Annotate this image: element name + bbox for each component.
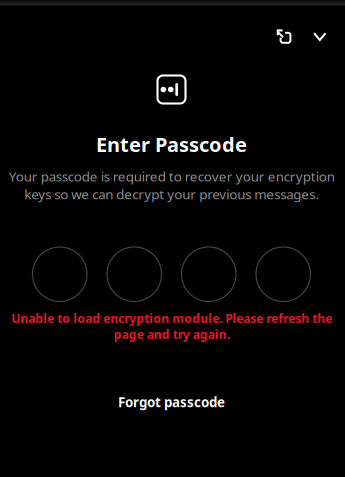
staticText: Enter Passcode — [96, 131, 247, 158]
staticText: Forgot passcode — [118, 393, 225, 411]
button[interactable]: Minimize — [304, 22, 336, 52]
staticText: Your passcode is required to recover you… — [8, 168, 334, 203]
button[interactable]: Forgot passcode — [106, 386, 237, 418]
staticText: Unable to load encryption module. Please… — [11, 310, 332, 342]
button[interactable]: Expand — [268, 22, 304, 52]
